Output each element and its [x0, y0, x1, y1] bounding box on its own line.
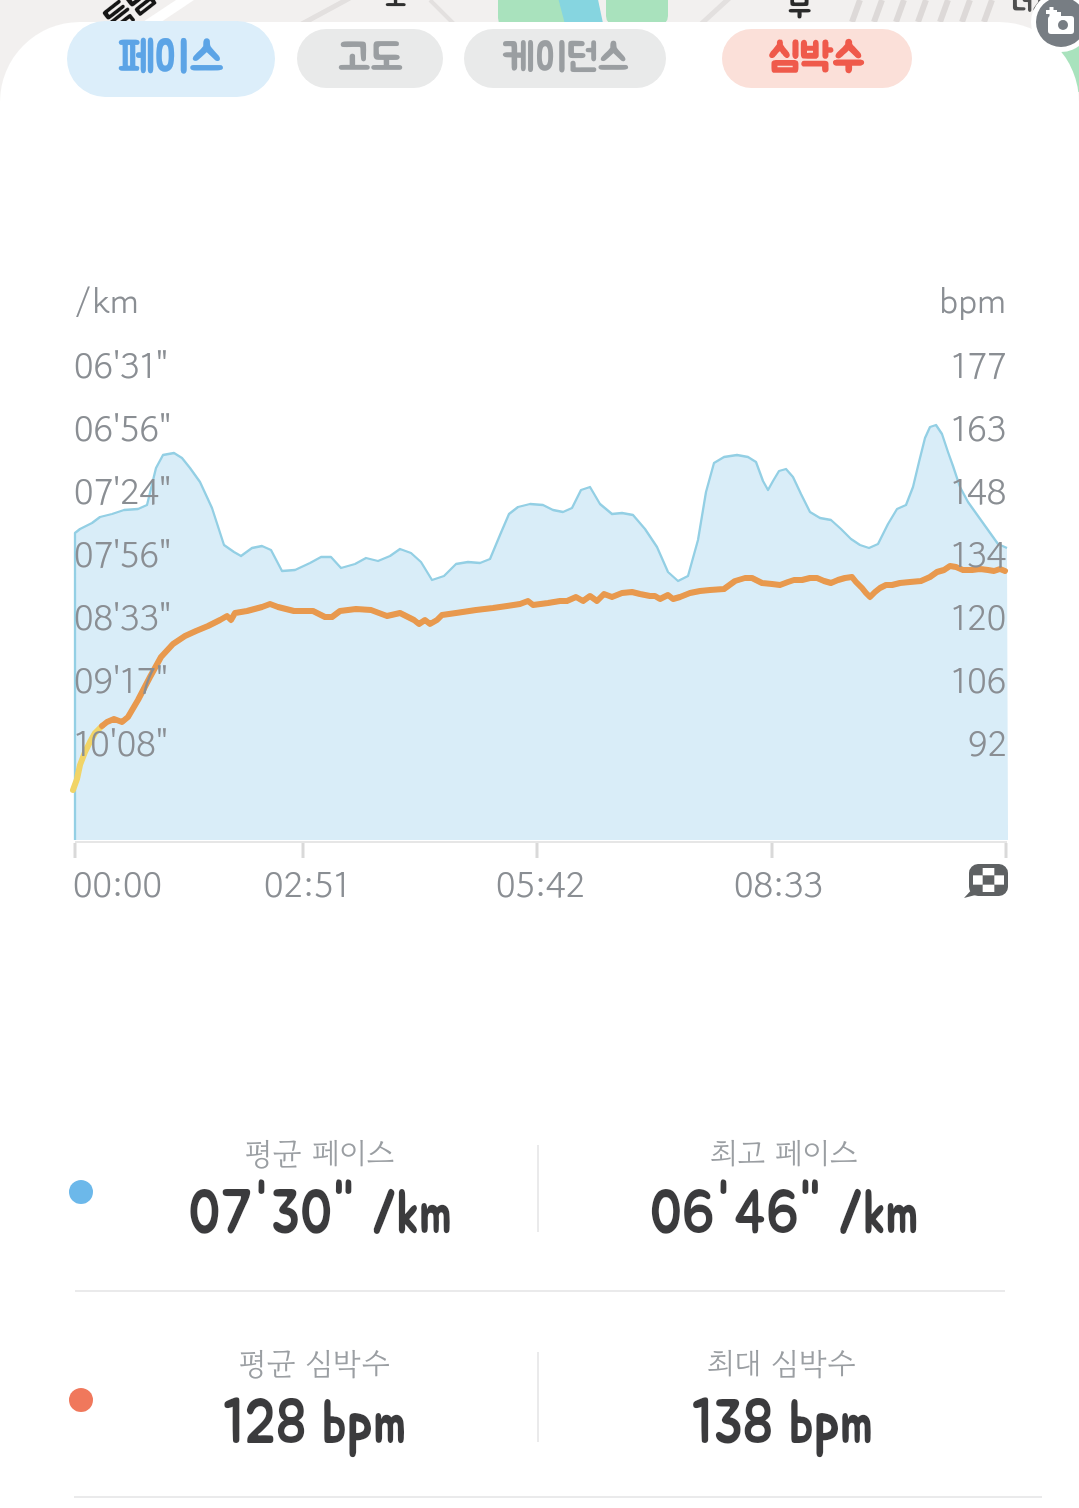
staticText: 08'33" — [74, 591, 172, 643]
button[interactable]: 케이던스 — [464, 29, 666, 88]
staticText: 05:42 — [496, 858, 585, 910]
staticText: 02:51 — [264, 858, 350, 910]
staticText: 128 bpm — [223, 1393, 407, 1455]
staticText: 09'17" — [74, 654, 168, 706]
staticText: 더지 — [1012, 0, 1054, 16]
staticText: 177 — [951, 339, 1007, 391]
staticText: 무 — [788, 0, 812, 23]
staticText: 케이던스 — [502, 39, 629, 79]
staticText: 06'56" — [74, 402, 172, 454]
staticText: 148 — [951, 465, 1007, 517]
staticText: 10'08" — [74, 717, 168, 769]
staticText: 106 — [951, 654, 1007, 706]
staticText: 00:00 — [73, 858, 162, 910]
staticText: 138 bpm — [692, 1393, 873, 1455]
staticText: 06'31" — [74, 339, 168, 391]
staticText: /km — [74, 274, 139, 326]
staticText: 평균 페이스 — [245, 1130, 395, 1175]
staticText: bpm — [939, 274, 1007, 326]
staticText: 최고 페이스 — [710, 1130, 858, 1175]
staticText: 평균 심박수 — [239, 1340, 391, 1385]
button[interactable] — [130, 1120, 510, 1260]
staticText: 페이스 — [118, 37, 224, 81]
staticText: 08:33 — [734, 858, 823, 910]
staticText: 07'24" — [74, 465, 172, 517]
button[interactable]: 고도 — [297, 29, 443, 88]
button[interactable]: 심박수 — [722, 29, 912, 88]
staticText: 92 — [968, 717, 1007, 769]
staticText: 06'46" /km — [650, 1183, 919, 1245]
staticText: 07'56" — [74, 528, 172, 580]
staticText: 고도 — [338, 39, 403, 79]
staticText: 134 — [951, 528, 1007, 580]
staticText: 07'30" /km — [188, 1183, 453, 1245]
button[interactable]: 페이스 — [67, 21, 275, 97]
staticText: 도 — [385, 0, 407, 12]
staticText: 120 — [951, 591, 1007, 643]
button[interactable] — [1036, 0, 1079, 47]
staticText: 심박수 — [769, 39, 865, 79]
staticText: 최대 심박수 — [707, 1340, 857, 1385]
staticText: 163 — [951, 402, 1007, 454]
staticText: 득담 — [99, 0, 165, 40]
